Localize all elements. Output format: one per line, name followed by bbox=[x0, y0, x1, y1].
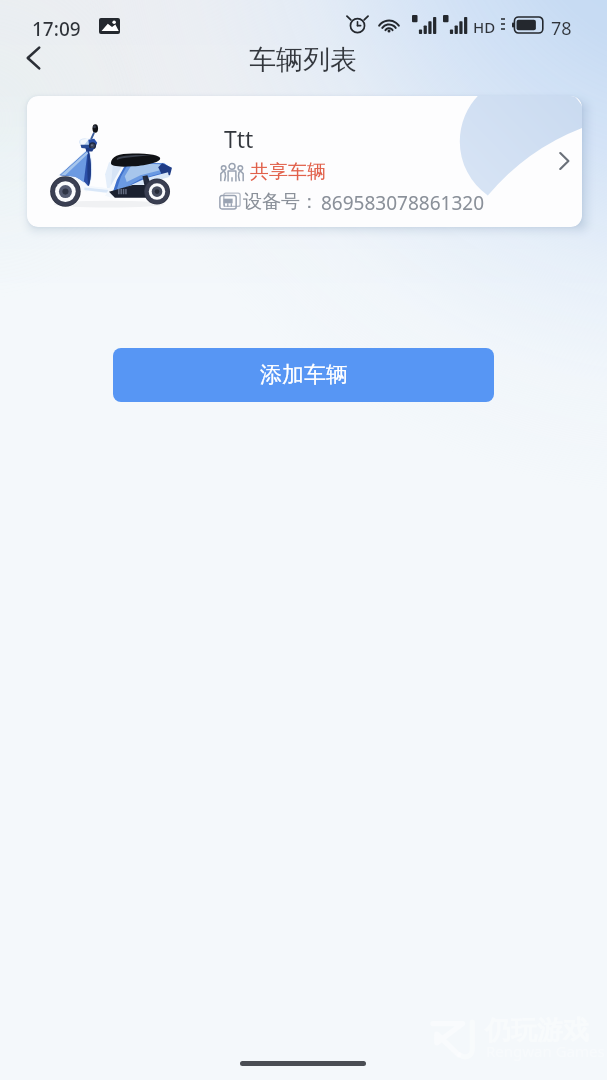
button[interactable]: 添加车辆 bbox=[113, 348, 494, 402]
button[interactable]: Back bbox=[12, 36, 56, 80]
staticText: HD bbox=[473, 17, 496, 37]
staticText: 17:09 bbox=[32, 16, 81, 42]
staticText: 共享车辆 bbox=[250, 160, 326, 184]
staticText: 设备号： bbox=[243, 190, 319, 214]
staticText: Ttt bbox=[224, 123, 254, 154]
staticText: 车辆列表 bbox=[249, 43, 357, 77]
staticText: 869583078861320 bbox=[321, 190, 485, 216]
staticText: 78 bbox=[551, 16, 572, 41]
button[interactable]: Open vehicle detail bbox=[543, 140, 582, 182]
button[interactable]: Ttt bbox=[27, 96, 582, 227]
staticText: 添加车辆 bbox=[260, 361, 348, 389]
